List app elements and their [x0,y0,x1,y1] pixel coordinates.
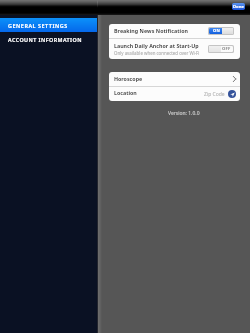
staticText: Location [114,89,137,96]
button[interactable]: GENERAL SETTINGS [0,18,97,32]
button[interactable]: Horoscope [109,72,240,86]
staticText: Version: 1.0.0 [168,110,200,117]
button[interactable]: ACCOUNT INFORMATION [0,32,97,46]
staticText: Horoscope [114,75,143,82]
button[interactable]: Off [209,46,233,52]
button[interactable]: Done [232,3,245,10]
staticText: GENERAL SETTINGS [8,22,68,29]
staticText: Breaking News Notification [114,27,189,34]
staticText: Only available when connected over Wi-Fi [114,50,200,56]
button[interactable]: Launch Daily Anchor at Start-Up [109,39,240,59]
button[interactable]: Breaking News Notification [109,24,240,38]
staticText: Done [233,4,244,10]
button[interactable]: Location [109,87,240,101]
staticText: ON [213,28,220,34]
staticText: Zip Code [204,91,225,98]
staticText: ACCOUNT INFORMATION [8,36,82,43]
button[interactable]: Use current location [228,90,236,98]
staticText: OFF [222,46,231,52]
staticText: Launch Daily Anchor at Start-Up [114,42,199,49]
button[interactable]: On [209,28,233,34]
